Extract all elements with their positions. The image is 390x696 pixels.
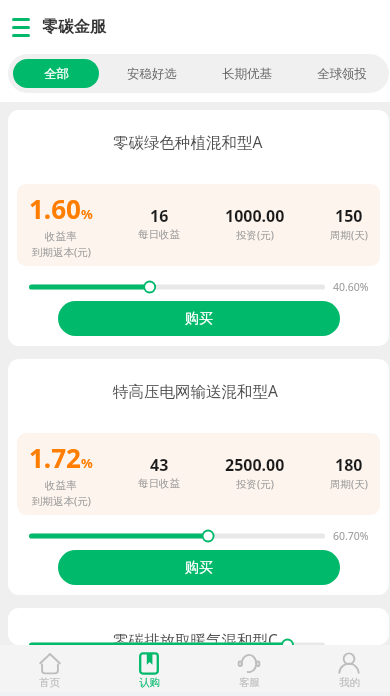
- button[interactable]: Menu: [7, 13, 35, 41]
- button[interactable]: 全球领投: [299, 59, 384, 88]
- staticText: 安稳好选: [127, 66, 177, 82]
- button[interactable]: 全部: [13, 59, 99, 88]
- staticText: 特高压电网输送混和型A: [113, 380, 278, 401]
- staticText: 1.60: [29, 191, 81, 226]
- staticText: 全部: [44, 66, 69, 82]
- staticText: 150: [335, 205, 363, 227]
- staticText: 周期(天): [330, 477, 368, 491]
- staticText: 收益率: [45, 230, 77, 243]
- button[interactable]: 零碳排放取暖气混和型C: [8, 608, 389, 645]
- staticText: %: [81, 454, 93, 472]
- staticText: 全球领投: [317, 66, 367, 82]
- staticText: 周期(天): [330, 228, 368, 242]
- staticText: 43: [150, 454, 169, 476]
- staticText: 首页: [39, 676, 60, 689]
- button[interactable]: 客服: [199, 645, 299, 692]
- button[interactable]: 首页: [0, 645, 99, 692]
- staticText: 180: [335, 454, 363, 476]
- staticText: 投资(元): [236, 477, 274, 491]
- button[interactable]: 长期优基: [204, 59, 289, 88]
- button[interactable]: 认购: [99, 645, 199, 692]
- staticText: 16: [150, 205, 169, 227]
- staticText: 我的: [339, 676, 360, 689]
- button[interactable]: 零碳绿色种植混和型A: [8, 110, 389, 346]
- button[interactable]: 购买: [58, 550, 340, 585]
- staticText: 60.70%: [333, 529, 369, 543]
- button[interactable]: 购买: [58, 301, 340, 336]
- button[interactable]: 安稳好选: [109, 59, 194, 88]
- staticText: 2500.00: [225, 454, 285, 476]
- staticText: 每日收益: [138, 228, 180, 241]
- staticText: 到期返本(元): [32, 245, 91, 259]
- staticText: 认购: [139, 676, 160, 689]
- staticText: 长期优基: [222, 66, 272, 82]
- staticText: 1.72: [29, 440, 81, 475]
- staticText: 零碳排放取暖气混和型C: [113, 629, 278, 645]
- staticText: 40.60%: [333, 280, 369, 294]
- staticText: %: [81, 205, 93, 223]
- staticText: 客服: [239, 676, 260, 689]
- staticText: 零碳金服: [42, 17, 106, 37]
- staticText: 每日收益: [138, 477, 180, 490]
- staticText: 购买: [185, 559, 213, 577]
- staticText: 到期返本(元): [32, 494, 91, 508]
- button[interactable]: 特高压电网输送混和型A: [8, 359, 389, 595]
- staticText: 购买: [185, 310, 213, 328]
- staticText: 零碳绿色种植混和型A: [113, 131, 263, 152]
- staticText: 1000.00: [225, 205, 285, 227]
- staticText: 投资(元): [236, 228, 274, 242]
- button[interactable]: 我的: [299, 645, 390, 692]
- staticText: 收益率: [45, 479, 77, 492]
